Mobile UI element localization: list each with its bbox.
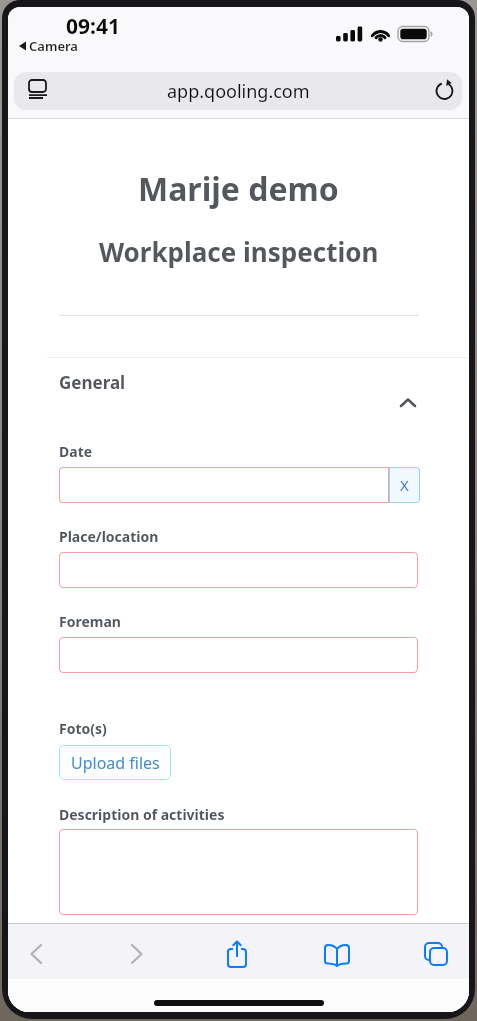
staticText: Date: [59, 442, 93, 461]
button[interactable]: [424, 942, 449, 967]
button[interactable]: [227, 940, 247, 968]
button[interactable]: Upload files: [59, 745, 171, 780]
staticText: General: [59, 371, 126, 394]
staticText: Camera: [29, 37, 78, 55]
staticText: app.qooling.com: [167, 79, 310, 104]
staticText: Foto(s): [59, 719, 107, 738]
staticText: X: [400, 475, 409, 495]
staticText: Foreman: [59, 612, 121, 631]
button[interactable]: [324, 944, 350, 966]
button[interactable]: [399, 397, 417, 408]
staticText: Workplace inspection: [99, 234, 379, 269]
staticText: Marije demo: [138, 167, 339, 211]
staticText: Upload files: [71, 752, 160, 774]
staticText: Place/location: [59, 527, 159, 546]
staticText: 09:41: [66, 12, 120, 41]
button[interactable]: X: [389, 467, 420, 503]
staticText: Description of activities: [59, 805, 225, 824]
button[interactable]: app.qooling.com: [14, 72, 462, 110]
button[interactable]: [29, 943, 43, 965]
button[interactable]: [130, 943, 144, 965]
